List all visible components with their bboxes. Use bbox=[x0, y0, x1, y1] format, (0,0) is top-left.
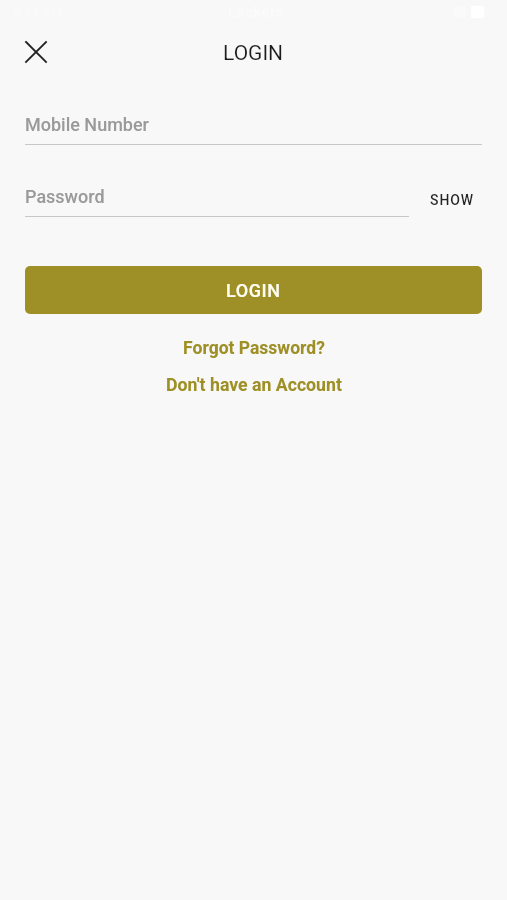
staticText: Forgot Password? bbox=[183, 338, 325, 359]
staticText: LOGIN bbox=[223, 41, 284, 65]
button[interactable]: Forgot Password? bbox=[169, 333, 339, 364]
button[interactable]: Close bbox=[12, 40, 60, 64]
staticText: Mobile Number bbox=[25, 114, 149, 135]
staticText: SHOW bbox=[430, 192, 474, 208]
button[interactable]: LOGIN bbox=[25, 266, 482, 314]
button[interactable]: Don't have an Account bbox=[152, 370, 356, 401]
staticText: Don't have an Account bbox=[166, 375, 342, 396]
button[interactable]: Mobile Number bbox=[25, 106, 482, 145]
button[interactable]: Password bbox=[25, 178, 409, 217]
staticText: LOGIN bbox=[226, 280, 281, 301]
staticText: Password bbox=[25, 186, 105, 207]
button[interactable]: SHOW bbox=[424, 186, 480, 214]
